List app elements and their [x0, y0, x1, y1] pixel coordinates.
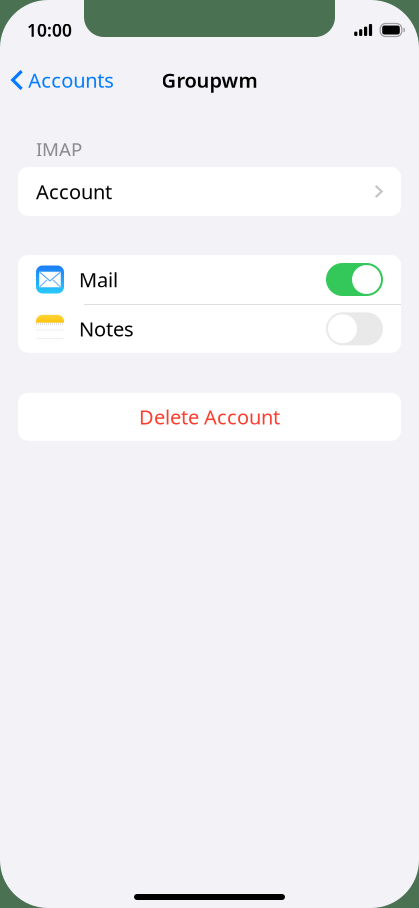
staticText: IMAP — [36, 137, 82, 161]
staticText: Accounts — [28, 67, 114, 93]
staticText: Mail — [79, 266, 118, 293]
button[interactable]: Mail — [326, 263, 383, 296]
button[interactable]: Accounts — [0, 60, 124, 100]
button[interactable]: Notes — [326, 312, 383, 345]
staticText: Notes — [79, 315, 134, 342]
staticText: Account — [36, 178, 112, 205]
staticText: 10:00 — [27, 18, 72, 41]
staticText: Groupwm — [161, 67, 257, 93]
button[interactable]: Delete Account — [18, 393, 401, 441]
staticText: Delete Account — [139, 403, 280, 430]
button[interactable]: Account — [18, 167, 401, 216]
